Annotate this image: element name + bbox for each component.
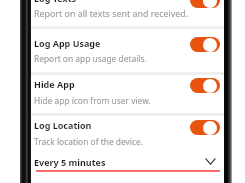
button[interactable] — [31, 75, 224, 113]
staticText: Hide App — [34, 78, 75, 90]
staticText: Log Location — [34, 119, 92, 131]
button[interactable]: Toggle Log Location — [190, 120, 220, 135]
button[interactable] — [31, 116, 224, 152]
staticText: Log App Usage — [34, 37, 101, 49]
button[interactable]: Toggle Log App Usage — [190, 37, 220, 52]
button[interactable] — [31, 0, 224, 26]
staticText: Hide app icon from user view. — [34, 95, 151, 106]
staticText: Log Texts — [34, 0, 77, 4]
button[interactable]: Toggle Log Texts — [190, 0, 220, 8]
button[interactable]: Toggle Hide App — [190, 78, 220, 93]
button[interactable] — [31, 29, 224, 72]
staticText: Report on all texts sent and received. — [34, 7, 189, 19]
staticText: Track location of the device. — [34, 136, 143, 147]
button[interactable] — [31, 155, 224, 171]
staticText: Every 5 minutes — [34, 156, 106, 168]
staticText: Report on app usage details. — [34, 53, 147, 64]
